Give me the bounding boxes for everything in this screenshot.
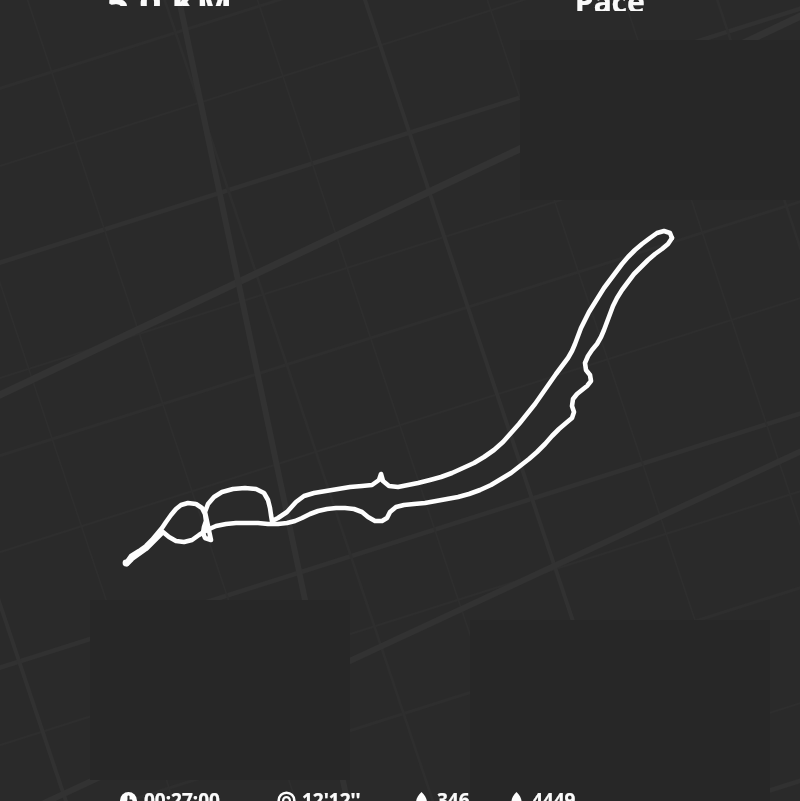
staticText: 5,0 KM <box>107 0 233 6</box>
button[interactable]: Calories <box>411 787 472 801</box>
button[interactable]: Steps <box>506 787 578 801</box>
staticText: 4449 <box>532 787 576 801</box>
button[interactable]: Duration <box>118 787 222 801</box>
button[interactable]: Average pace <box>276 787 363 801</box>
staticText: 00:27:00 <box>144 787 220 801</box>
staticText: 346 <box>437 787 470 801</box>
staticText: 12'12'' <box>302 787 361 801</box>
staticText: Pace <box>575 0 645 11</box>
